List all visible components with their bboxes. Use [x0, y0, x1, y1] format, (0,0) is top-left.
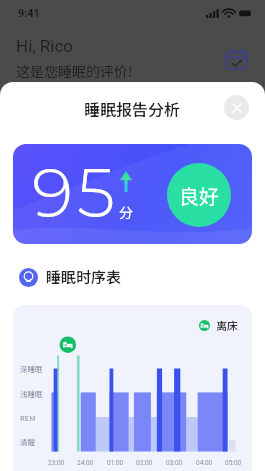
staticText: 05:00 — [225, 459, 242, 467]
staticText: 01:00 — [107, 459, 124, 467]
staticText: REM — [20, 412, 36, 423]
staticText: 浅睡眠 — [20, 388, 43, 399]
staticText: 这是您睡眠的评价! — [16, 61, 133, 81]
staticText: 24:00 — [77, 459, 94, 467]
staticText: 04:00 — [196, 459, 213, 467]
staticText: 睡眠时序表 — [46, 266, 122, 288]
staticText: 深睡眠 — [20, 363, 43, 374]
staticText: 良好 — [179, 181, 219, 210]
button[interactable]: Close — [224, 95, 249, 120]
staticText: 23:00 — [48, 459, 65, 467]
staticText: 离床 — [216, 317, 238, 333]
button[interactable]: Calendar — [225, 48, 248, 71]
staticText: 分 — [119, 202, 133, 222]
staticText: 95 — [32, 151, 119, 234]
staticText: Hi, Rico — [16, 36, 74, 56]
button[interactable]: 离床 — [199, 317, 238, 333]
staticText: 9:41 — [18, 7, 40, 20]
staticText: 02:00 — [136, 459, 153, 467]
staticText: 03:00 — [166, 459, 183, 467]
staticText: 清醒 — [20, 436, 35, 447]
staticText: 睡眠报告分析 — [84, 97, 181, 120]
